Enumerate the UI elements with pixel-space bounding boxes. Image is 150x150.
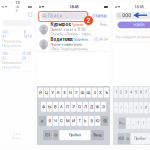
staticText: 18:45 (16, 0, 20, 14)
staticText: Пробел (134, 137, 146, 141)
staticText: Ц (45, 90, 48, 95)
staticText: 000 (122, 13, 131, 18)
staticText: Служба «Прайм» · отдел… (50, 32, 93, 36)
staticText: • • • (13, 132, 21, 136)
staticText: Ь (84, 119, 87, 123)
staticText: Заказ (2, 51, 9, 60)
staticText: / (120, 106, 121, 110)
staticText: Водитель (74, 37, 89, 41)
staticText: ☺ (126, 137, 129, 140)
staticText: Щ (86, 90, 90, 95)
staticText: Д (90, 104, 93, 109)
staticText: 5 (135, 90, 137, 94)
staticText: Ы (48, 104, 51, 109)
staticText: - (115, 106, 117, 110)
staticText: Отправитель (2, 61, 22, 65)
button[interactable]: Отмена (92, 14, 106, 18)
staticText: 4 (130, 90, 132, 94)
staticText: Отмена (92, 14, 106, 18)
staticText: Р (72, 104, 74, 109)
staticText: ⌫ (103, 119, 107, 123)
staticText: О (78, 104, 81, 109)
staticText: Л (84, 104, 87, 109)
staticText: Курьер (72, 23, 84, 27)
staticText: Ъ (105, 90, 108, 95)
staticText: П (66, 104, 69, 109)
staticText: 2 (120, 90, 122, 94)
staticText: Б (90, 119, 92, 123)
staticText: Ф (42, 104, 45, 109)
staticText: К (57, 90, 60, 95)
staticText: Г (75, 90, 77, 95)
staticText: С (60, 119, 63, 123)
staticText: ) (140, 106, 141, 110)
staticText: У (51, 90, 53, 95)
staticText: #+= (119, 121, 125, 125)
staticText: Заказ (2, 30, 9, 39)
staticText: Рейс (100, 23, 108, 26)
staticText: Поиск (48, 13, 62, 19)
staticText: В (54, 104, 57, 109)
button[interactable]: Compose (28, 13, 32, 16)
staticText: ⇧ (40, 119, 44, 123)
staticText: Я (48, 119, 50, 123)
staticText: З (93, 90, 95, 95)
staticText: Отправитель (2, 39, 22, 43)
staticText: ₽ (145, 106, 147, 110)
staticText: 2 (86, 17, 90, 24)
button[interactable]: Водителев (37, 37, 110, 51)
staticText: 3 (125, 90, 127, 94)
staticText: АБВ (118, 137, 124, 140)
staticText: Получатель (2, 66, 21, 69)
staticText: Й (39, 90, 42, 95)
staticText: ; (130, 106, 131, 110)
staticText: 25.04.24 (94, 37, 108, 41)
staticText: ' (148, 121, 149, 125)
staticText: И (72, 119, 75, 123)
staticText: Найти (133, 23, 144, 27)
staticText: 25.04.24 (22, 51, 32, 60)
staticText: ! (143, 121, 144, 125)
staticText: Получатель (2, 44, 21, 48)
staticText: 18:45 (135, 5, 144, 9)
staticText: 18:45 (70, 5, 79, 9)
button[interactable]: Найти (117, 22, 150, 28)
staticText: ☺ (54, 133, 57, 137)
staticText: Принял заказ в 17:50 (50, 28, 85, 32)
staticText: Новый комментарий (50, 43, 82, 46)
staticText: Ш (80, 90, 84, 95)
staticText: «Ваш Подразделение» (50, 47, 88, 51)
staticText: Конец (12, 136, 22, 140)
staticText: Т (78, 119, 80, 123)
staticText: 7 (145, 90, 147, 94)
staticText: Ж (95, 104, 99, 109)
staticText: Водителев (50, 37, 72, 42)
staticText: Х (99, 90, 102, 95)
staticText: Э (102, 104, 105, 109)
staticText: Ч (54, 119, 57, 123)
staticText: Е (63, 90, 65, 95)
staticText: А (60, 104, 63, 109)
staticText: Курьеров (50, 22, 70, 27)
staticText: , (133, 121, 134, 125)
staticText: Н (69, 90, 72, 95)
staticText: ? (137, 121, 139, 125)
staticText: 1 (115, 90, 116, 94)
staticText: М (66, 119, 69, 123)
staticText: Ввод (94, 133, 102, 137)
staticText: Пробел (69, 133, 81, 137)
staticText: В пути (24, 30, 32, 39)
button[interactable]: Курьеров (37, 22, 110, 36)
staticText: . (128, 121, 129, 125)
staticText: 6 (140, 90, 142, 94)
staticText: Ю (95, 119, 99, 123)
staticText: 123 (45, 133, 50, 137)
staticText: Не найдено отправлений (116, 35, 150, 39)
